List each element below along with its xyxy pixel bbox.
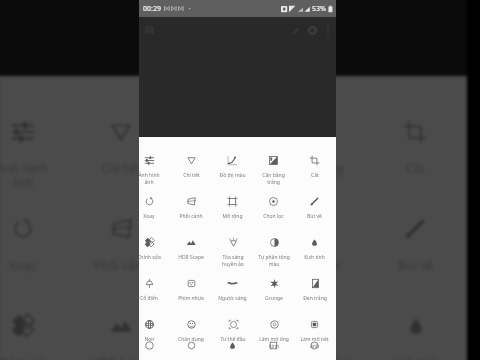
button[interactable]	[139, 340, 170, 360]
button[interactable]: HDR Scape	[72, 313, 170, 360]
button[interactable]: Cắt	[294, 155, 335, 196]
button[interactable]: Tỏa sáng huyền ảo	[170, 313, 268, 360]
staticText: Mở rộng	[222, 213, 243, 220]
staticText: Ngược sáng	[218, 295, 247, 302]
button[interactable]: Chi tiết	[72, 119, 170, 216]
button[interactable]	[294, 340, 335, 360]
button[interactable]: Adjust	[304, 22, 321, 39]
staticText: Tỏa sáng huyền ảo	[222, 254, 244, 267]
staticText: Làm mờ nét ảnh	[300, 336, 329, 349]
staticText: 00:29	[143, 4, 161, 14]
staticText: Noir	[144, 336, 155, 343]
staticText: Phối cảnh	[94, 257, 149, 273]
staticText: Chọn lọc	[293, 257, 342, 273]
button[interactable]: Back	[141, 22, 157, 38]
staticText: Bút vẽ	[307, 213, 322, 220]
button[interactable]: Làm mờ ống kính	[253, 319, 294, 360]
button[interactable]: Ảnh hình ảnh	[0, 119, 72, 216]
button[interactable]: Mở rộng	[170, 216, 268, 313]
staticText: Chi tiết	[101, 160, 141, 176]
button[interactable]: Phim nhựa	[170, 278, 212, 319]
staticText: HDR Scape	[91, 354, 152, 360]
button[interactable]	[253, 340, 294, 360]
button[interactable]: Cân bằng trắng	[268, 119, 366, 216]
staticText: Cắt	[311, 172, 319, 179]
staticText: Đồ thị màu	[219, 172, 246, 179]
staticText: Đồ thị màu	[188, 160, 250, 176]
button[interactable]: Tự phần tông màu	[268, 313, 366, 360]
staticText: HDR Scape	[178, 254, 204, 261]
button[interactable]: Chi tiết	[170, 155, 212, 196]
staticText: Mở rộng	[195, 257, 243, 273]
staticText: Tự phần tông màu	[258, 254, 290, 267]
button[interactable]: Đồ thị màu	[212, 155, 253, 196]
button[interactable]: Kịch tính	[366, 313, 464, 360]
button[interactable]: Cổ điển	[139, 278, 170, 319]
button[interactable]	[170, 340, 212, 360]
staticText: Chỉnh sửa	[139, 254, 161, 261]
staticText: Cổ điển	[140, 295, 158, 302]
button[interactable]: Ảnh hình ảnh	[139, 155, 170, 196]
staticText: Làm mờ ống kính	[259, 336, 289, 349]
button[interactable]: Chọn lọc	[268, 216, 366, 313]
staticText: Grunge	[265, 295, 283, 302]
staticText: Đen trắng	[303, 295, 327, 302]
staticText: Cân bằng trắng	[290, 160, 344, 191]
staticText: Chọn lọc	[263, 213, 284, 220]
staticText: Cân bằng trắng	[262, 172, 285, 185]
button[interactable]: Chỉnh sửa	[139, 237, 170, 278]
button[interactable]: Cân bằng trắng	[253, 155, 294, 196]
button[interactable]: Đồ thị màu	[170, 119, 268, 216]
button[interactable]: Tỏa sáng huyền ảo	[212, 237, 253, 278]
button[interactable]: Bút vẽ	[294, 196, 335, 237]
staticText: Xoay	[143, 213, 155, 220]
staticText: Phim nhựa	[178, 295, 204, 302]
button[interactable]: Đen trắng	[294, 278, 335, 319]
staticText: 53%	[312, 4, 326, 14]
button[interactable]: Xoay	[139, 196, 170, 237]
button[interactable]: Ngược sáng	[212, 278, 253, 319]
staticText: Ảnh hình ảnh	[139, 172, 160, 185]
button[interactable]: Tư thế đầu	[212, 319, 253, 360]
button[interactable]: Phối cảnh	[170, 196, 212, 237]
staticText: Tư thế đầu	[220, 336, 246, 343]
button[interactable]: Chọn lọc	[253, 196, 294, 237]
button[interactable]: Chân dung	[170, 319, 212, 360]
button[interactable]: Tự phần tông màu	[253, 237, 294, 278]
button[interactable]: Mở rộng	[212, 196, 253, 237]
button[interactable]	[212, 340, 253, 360]
button[interactable]: Kịch tính	[294, 237, 335, 278]
staticText: Phối cảnh	[179, 213, 203, 220]
staticText: Chân dung	[178, 336, 204, 343]
button[interactable]: Phối cảnh	[72, 216, 170, 313]
staticText: Tự phần tông màu	[279, 354, 355, 360]
staticText: Kịch tính	[304, 254, 325, 261]
staticText: Chi tiết	[183, 172, 200, 179]
button[interactable]: Chỉnh sửa	[0, 313, 72, 360]
button[interactable]: HDR Scape	[170, 237, 212, 278]
button[interactable]: Grunge	[253, 278, 294, 319]
button[interactable]: Làm mờ nét ảnh	[294, 319, 335, 360]
button[interactable]: Noir	[139, 319, 170, 360]
